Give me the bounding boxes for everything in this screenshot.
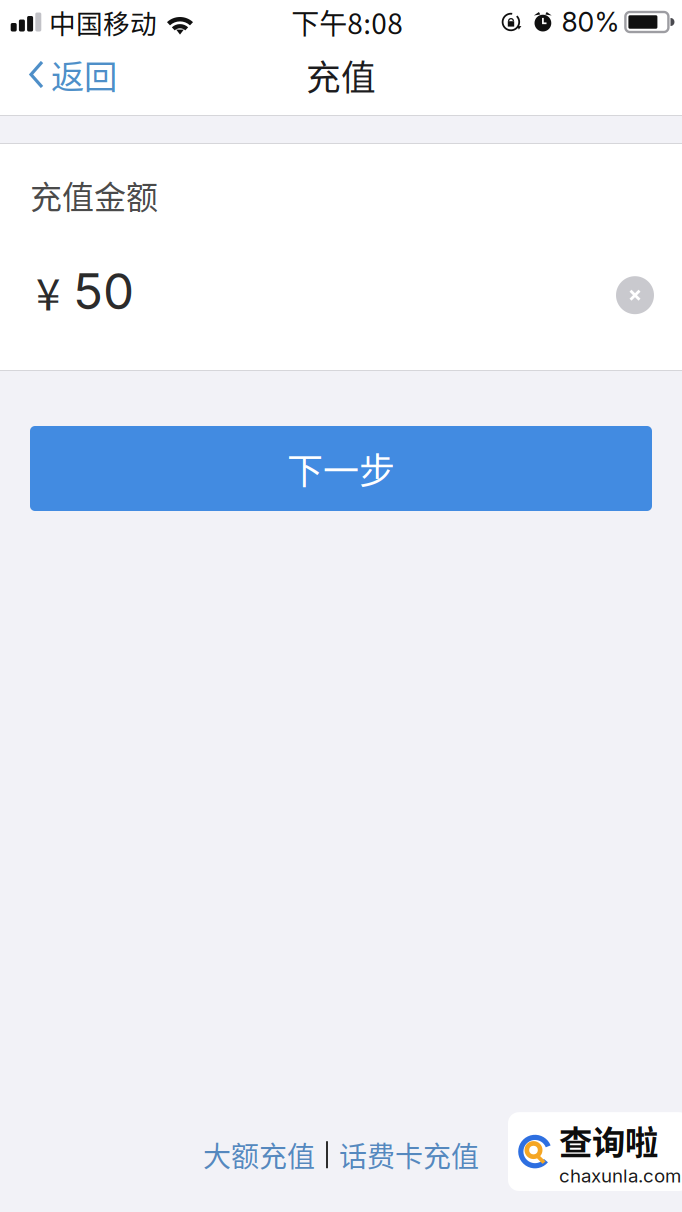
staticText: 80%	[561, 6, 619, 38]
staticText: 充值	[306, 50, 376, 101]
staticText: 查询啦	[559, 1116, 658, 1164]
button[interactable]: 下一步	[30, 426, 652, 511]
staticText: 充值金额	[30, 172, 158, 218]
staticText: 话费卡充值	[339, 1134, 479, 1175]
button[interactable]: 大额充值	[203, 1128, 326, 1181]
staticText: 大额充值	[203, 1134, 315, 1175]
button[interactable]: 话费卡充值	[328, 1128, 479, 1181]
staticText: 50	[73, 261, 134, 321]
staticText: 返回	[51, 50, 117, 99]
staticText: 下午8:08	[291, 2, 403, 42]
staticText: 下一步	[287, 442, 395, 494]
button[interactable]: 清除	[609, 269, 661, 321]
staticText: 中国移动	[49, 3, 157, 41]
button[interactable]: 返回	[0, 48, 133, 111]
staticText: chaxunla.com	[559, 1164, 681, 1187]
staticText: ¥	[36, 259, 60, 323]
